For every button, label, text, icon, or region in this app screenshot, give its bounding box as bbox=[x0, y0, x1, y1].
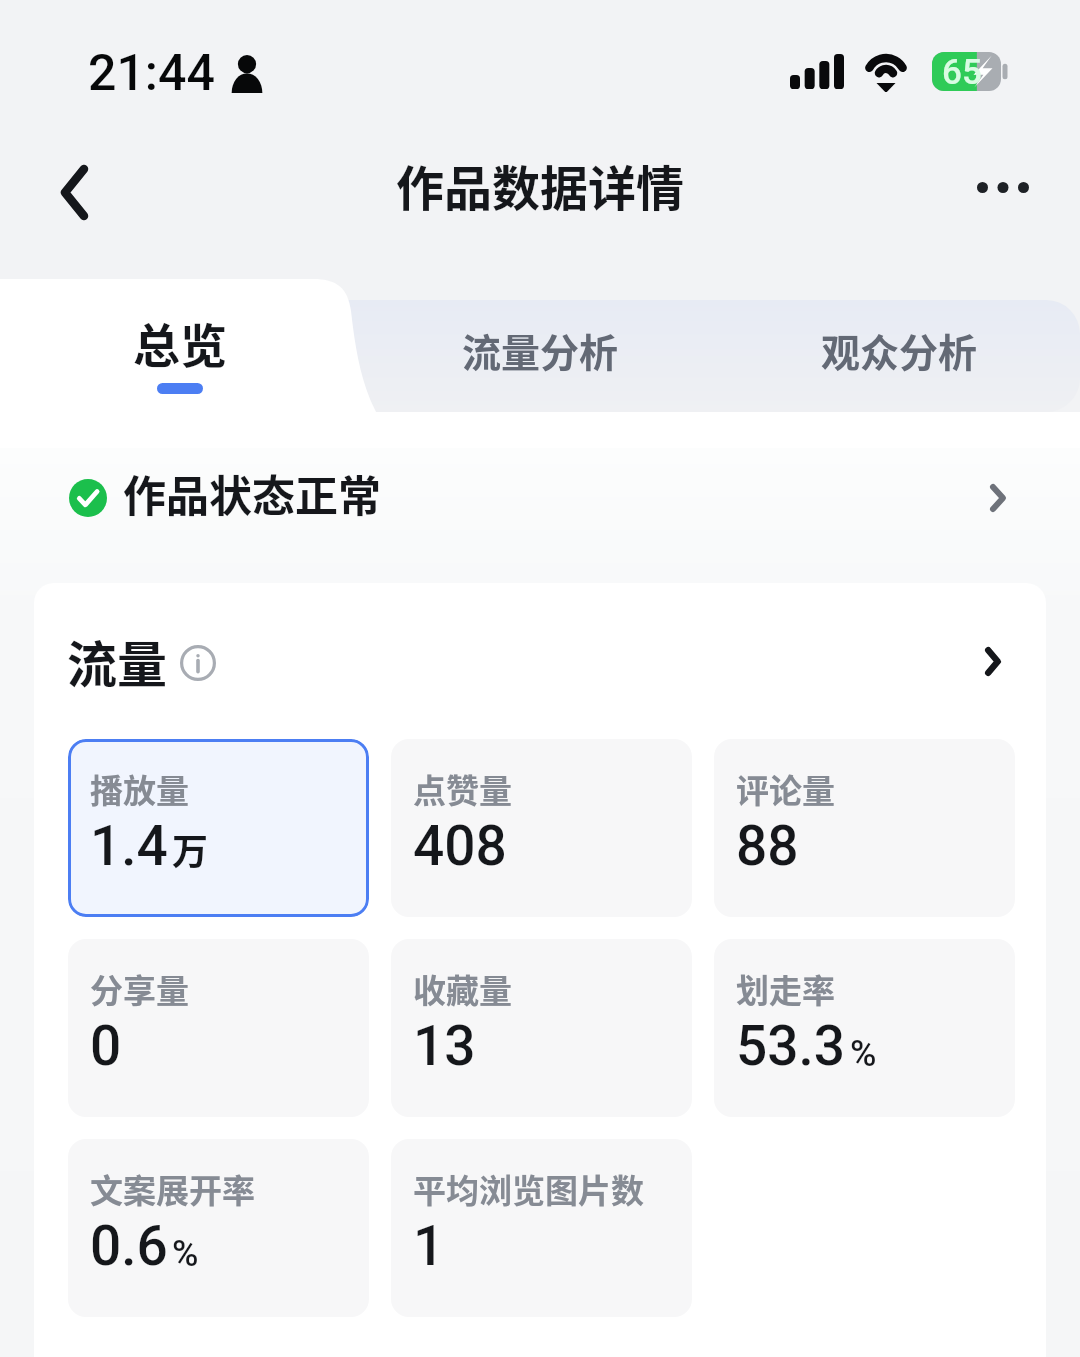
button[interactable]: 平均浏览图片数 bbox=[391, 1139, 692, 1317]
staticText: 88 bbox=[736, 814, 799, 878]
staticText: 作品状态正常 bbox=[123, 462, 381, 524]
button[interactable]: 播放量 bbox=[68, 739, 369, 917]
button[interactable]: 点赞量 bbox=[391, 739, 692, 917]
staticText: 65 bbox=[942, 52, 982, 91]
staticText: 408 bbox=[413, 814, 507, 878]
staticText: 划走率 bbox=[736, 965, 835, 1013]
staticText: 评论量 bbox=[736, 765, 835, 813]
staticText: 平均浏览图片数 bbox=[413, 1165, 644, 1213]
button[interactable]: 流量 bbox=[34, 621, 1046, 701]
staticText: 流量 bbox=[67, 625, 167, 697]
staticText: % bbox=[850, 1033, 877, 1075]
button[interactable]: 分享量 bbox=[68, 939, 369, 1117]
staticText: 分享量 bbox=[90, 965, 189, 1013]
button[interactable]: 评论量 bbox=[714, 739, 1015, 917]
button[interactable]: 文案展开率 bbox=[68, 1139, 369, 1317]
staticText: 13 bbox=[413, 1014, 476, 1078]
staticText: 53.3 bbox=[736, 1014, 846, 1078]
staticText: 作品数据详情 bbox=[396, 150, 685, 220]
button[interactable]: 划走率 bbox=[714, 939, 1015, 1117]
button[interactable]: Back bbox=[36, 154, 112, 230]
button[interactable]: More options bbox=[953, 149, 1053, 225]
staticText: 1 bbox=[413, 1214, 445, 1278]
staticText: 万 bbox=[172, 823, 209, 875]
staticText: 点赞量 bbox=[413, 765, 512, 813]
button[interactable]: 收藏量 bbox=[391, 939, 692, 1117]
staticText: 21:44 bbox=[88, 44, 215, 103]
button[interactable]: 流量分析 bbox=[360, 300, 720, 412]
staticText: 文案展开率 bbox=[90, 1165, 255, 1213]
staticText: % bbox=[172, 1233, 199, 1275]
staticText: 观众分析 bbox=[821, 322, 978, 378]
staticText: 流量分析 bbox=[462, 322, 619, 378]
button[interactable]: 作品状态正常 bbox=[0, 450, 1080, 546]
staticText: 0 bbox=[90, 1014, 122, 1078]
button[interactable]: 总览 bbox=[0, 279, 359, 448]
staticText: 播放量 bbox=[90, 765, 189, 813]
button[interactable]: 观众分析 bbox=[719, 300, 1079, 412]
staticText: 总览 bbox=[133, 308, 227, 376]
staticText: 收藏量 bbox=[413, 965, 512, 1013]
staticText: 1.4 bbox=[90, 814, 168, 878]
staticText: 0.6 bbox=[90, 1214, 168, 1278]
